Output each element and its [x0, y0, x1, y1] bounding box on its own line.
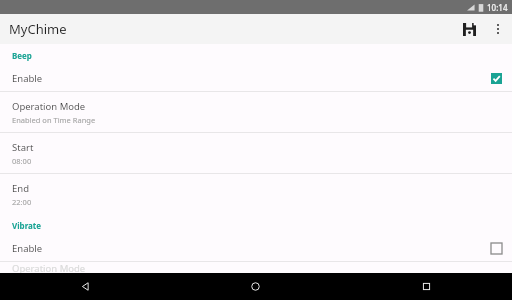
staticText: Beep	[12, 50, 32, 61]
staticText: 10:14	[487, 2, 508, 13]
staticText: Operation Mode	[12, 100, 86, 113]
button[interactable]: Enable	[0, 236, 512, 261]
button[interactable]: Recent apps	[341, 273, 512, 300]
button[interactable]: Operation Mode	[0, 262, 512, 273]
button[interactable]: Home	[170, 273, 341, 300]
button[interactable]: Operation Mode	[0, 92, 512, 132]
staticText: 08:00	[12, 156, 32, 166]
button[interactable]: Enable	[0, 66, 512, 91]
button[interactable]: Back	[0, 273, 170, 300]
button[interactable]: More options	[484, 15, 512, 43]
staticText: Operation Mode	[12, 262, 86, 273]
button[interactable]: Save	[454, 14, 484, 44]
staticText: Start	[12, 141, 34, 154]
button[interactable]: End	[0, 174, 512, 214]
staticText: Enabled on Time Range	[12, 115, 96, 125]
staticText: Enable	[12, 242, 491, 255]
staticText: 22:00	[12, 197, 32, 207]
staticText: MyChime	[9, 20, 67, 38]
button[interactable]: Start	[0, 133, 512, 173]
staticText: End	[12, 182, 29, 195]
staticText: Enable	[12, 72, 491, 85]
staticText: Vibrate	[12, 220, 42, 231]
